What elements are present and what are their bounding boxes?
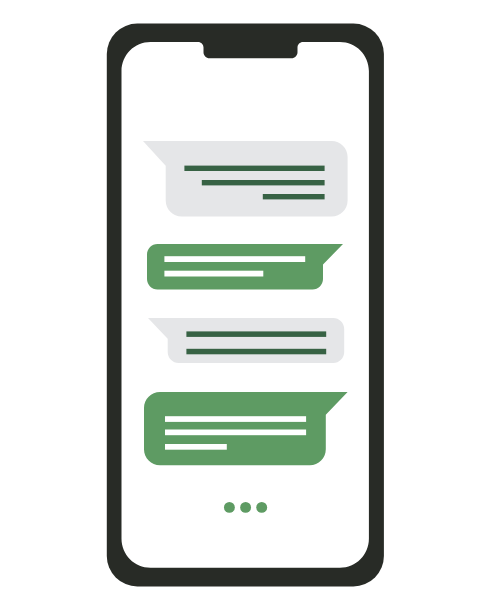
- button[interactable]: Received message: [143, 141, 348, 217]
- button[interactable]: Sent message: [144, 392, 348, 465]
- button[interactable]: Received message: [148, 318, 344, 363]
- button[interactable]: Sent message: [147, 244, 343, 289]
- button[interactable]: Typing indicator: [219, 497, 272, 518]
